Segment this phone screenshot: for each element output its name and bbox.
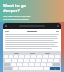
button[interactable]: Enter [50, 67, 60, 70]
staticText: Take notes side by side with your favour… [3, 15, 31, 21]
button[interactable]: Suggestion [30, 53, 35, 54]
button[interactable]: App preview [3, 23, 61, 72]
button[interactable]: Menu [5, 25, 7, 27]
button[interactable]: Suggestion [14, 53, 19, 54]
staticText: Want to go deeper? [3, 3, 26, 13]
button[interactable]: Suggestion [45, 53, 50, 54]
